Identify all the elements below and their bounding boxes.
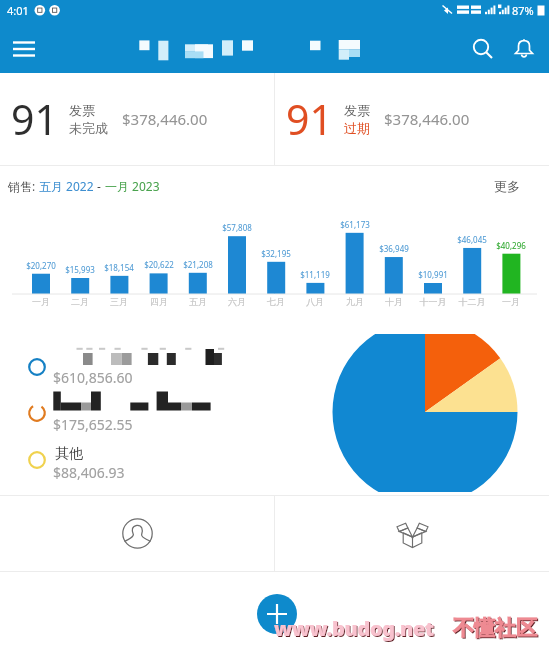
staticText: 六月 (216, 296, 258, 307)
button[interactable]: Menu (0, 25, 48, 73)
staticText: 五月 2022 (39, 178, 94, 194)
staticText: 九月 (334, 296, 376, 307)
staticText: 销售: (8, 178, 39, 194)
staticText: www.budog.net (275, 616, 435, 643)
staticText: $32,195 (255, 248, 297, 259)
button[interactable]: Search (461, 27, 505, 71)
button[interactable]: $610,856.60 (28, 346, 278, 386)
staticText: $11,119 (294, 269, 336, 280)
button[interactable]: 其他 (28, 444, 278, 481)
staticText: $15,993 (59, 264, 101, 275)
staticText: www.budog.net (274, 615, 434, 642)
staticText: $378,446.00 (122, 109, 208, 129)
staticText: $46,045 (451, 234, 493, 245)
staticText: 不懂社区 (453, 615, 537, 641)
staticText: 五月 (177, 296, 219, 307)
button[interactable]: Notifications (502, 27, 546, 71)
staticText: $20,270 (20, 260, 62, 271)
staticText: 二月 (59, 296, 101, 307)
button[interactable]: 更多 (494, 178, 520, 194)
staticText: 过期 (344, 120, 370, 136)
staticText: - (94, 178, 105, 194)
staticText: 不懂社区 (454, 616, 538, 642)
staticText: $57,808 (216, 222, 258, 233)
button[interactable]: 91 (0, 73, 274, 165)
staticText: $21,208 (177, 259, 219, 270)
staticText: 发票 (69, 102, 95, 118)
button[interactable]: Add (257, 594, 297, 634)
staticText: 八月 (294, 296, 336, 307)
staticText: $61,173 (334, 219, 376, 230)
staticText: $18,154 (98, 262, 140, 273)
staticText: 十月 (373, 296, 415, 307)
staticText: 未完成 (69, 120, 108, 136)
staticText: 91 (11, 91, 58, 147)
staticText: 十一月 (412, 296, 454, 307)
staticText: 四月 (138, 296, 180, 307)
staticText: $36,949 (373, 243, 415, 254)
staticText: 91 (286, 91, 333, 147)
staticText: 七月 (255, 296, 297, 307)
staticText: $175,652.55 (53, 415, 133, 434)
staticText: $378,446.00 (384, 109, 470, 129)
staticText: 87% (512, 3, 534, 18)
button[interactable]: 91 (275, 73, 549, 165)
staticText: $20,622 (138, 259, 180, 270)
staticText: $88,406.93 (53, 463, 125, 482)
staticText: 一月 (490, 296, 532, 307)
button[interactable]: Items (275, 496, 549, 571)
staticText: 十二月 (451, 296, 493, 307)
staticText: 4:01 (7, 3, 29, 18)
staticText: 其他 (55, 445, 83, 463)
button[interactable]: Contacts (0, 496, 274, 571)
staticText: 三月 (98, 296, 140, 307)
staticText: $10,991 (412, 269, 454, 280)
button[interactable]: $175,652.55 (28, 393, 278, 433)
staticText: 发票 (344, 102, 370, 118)
staticText: $40,296 (490, 240, 532, 251)
staticText: 一月 2023 (105, 178, 160, 194)
staticText: $610,856.60 (53, 368, 133, 387)
staticText: 更多 (494, 178, 520, 194)
staticText: 一月 (20, 296, 62, 307)
